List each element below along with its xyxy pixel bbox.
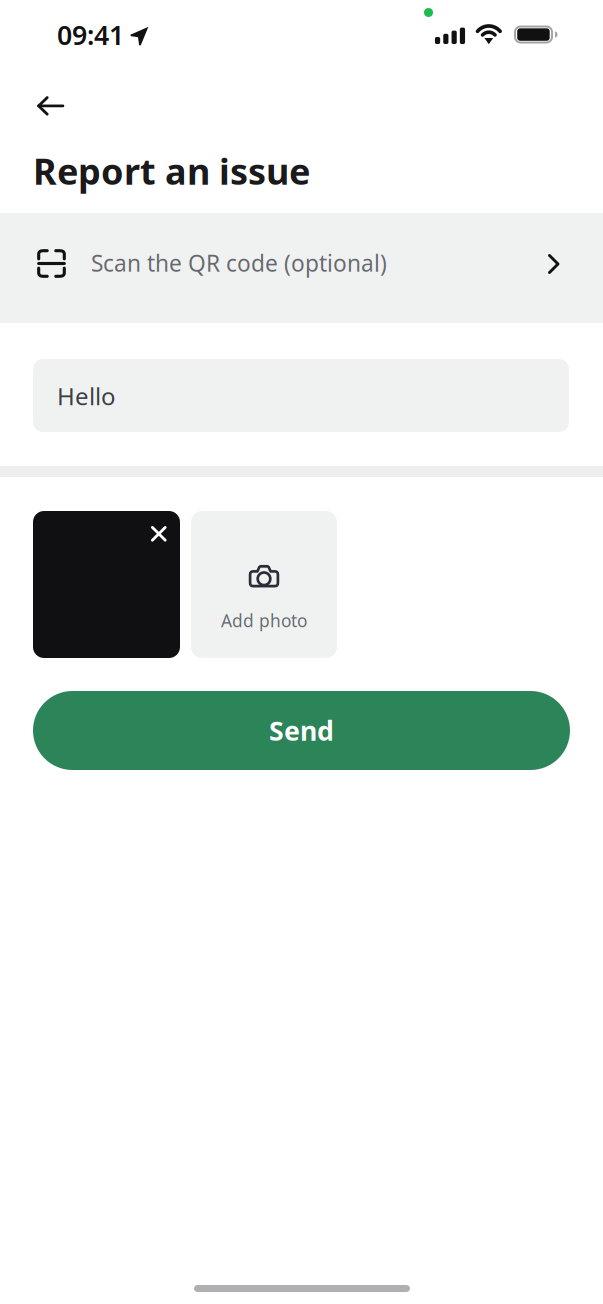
button[interactable]: Scan the QR code (optional) (0, 213, 603, 323)
button[interactable]: Back (0, 74, 92, 138)
staticText: Scan the QR code (optional) (91, 248, 387, 278)
staticText: Send (269, 713, 334, 748)
staticText: Add photo (221, 609, 307, 632)
staticText: Report an issue (33, 147, 310, 195)
button[interactable]: Add photo (191, 511, 337, 658)
button[interactable]: Remove photo (137, 512, 183, 558)
staticText: Hello (57, 380, 116, 412)
button[interactable]: Send (33, 691, 570, 770)
staticText: 09:41 (57, 17, 124, 52)
